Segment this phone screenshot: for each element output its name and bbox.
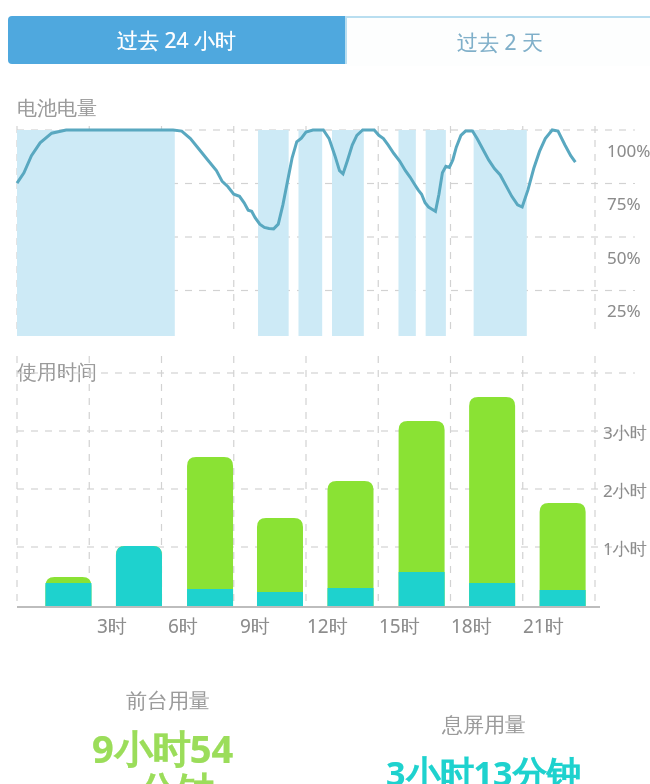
staticText: 过去 2 天 (457, 28, 543, 57)
staticText: 100% (607, 139, 650, 162)
staticText: 2小时 (603, 479, 647, 502)
staticText: 9时 (240, 613, 270, 639)
staticText: 3小时 (603, 421, 647, 444)
button[interactable]: 过去 24 小时 (8, 16, 345, 64)
staticText: 过去 24 小时 (117, 26, 236, 55)
staticText: 3小时13分钟 (386, 750, 581, 784)
staticText: 50% (607, 246, 641, 269)
button[interactable]: 过去 2 天 (345, 16, 650, 64)
staticText: 21时 (523, 613, 564, 639)
staticText: 6时 (168, 613, 198, 639)
staticText: 75% (607, 192, 641, 215)
staticText: 18时 (451, 613, 492, 639)
staticText: 25% (607, 299, 641, 322)
staticText: 使用时间 (17, 360, 97, 385)
staticText: 前台用量 (126, 688, 210, 714)
staticText: 3时 (97, 613, 127, 639)
button[interactable]: 前台用量 (60, 688, 290, 784)
staticText: 1小时 (603, 537, 647, 560)
staticText: 9小时54 (92, 722, 234, 774)
staticText: 分钟 (138, 768, 214, 784)
button[interactable]: 息屏用量 (380, 712, 620, 784)
staticText: 息屏用量 (442, 712, 526, 738)
staticText: 12时 (307, 613, 348, 639)
staticText: 电池电量 (17, 96, 97, 121)
staticText: 15时 (379, 613, 420, 639)
